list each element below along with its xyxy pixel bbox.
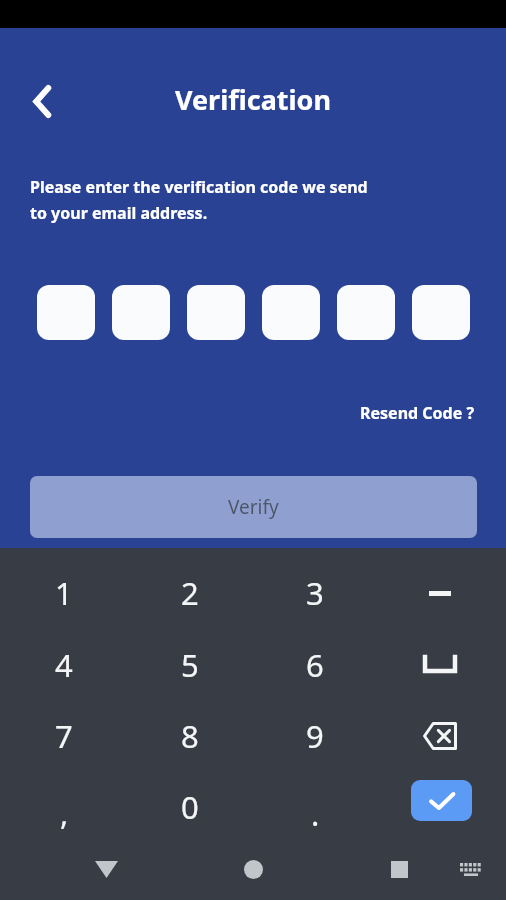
- button[interactable]: Confirm: [411, 780, 472, 821]
- staticText: 7: [55, 715, 73, 757]
- button[interactable]: Resend Code ?: [0, 396, 475, 430]
- button[interactable]: Code digit 4: [262, 285, 320, 340]
- button[interactable]: Recent apps: [369, 841, 429, 897]
- button[interactable]: 6: [257, 631, 373, 699]
- button[interactable]: 5: [132, 631, 248, 699]
- button[interactable]: Space: [382, 631, 498, 699]
- button[interactable]: ,: [6, 779, 122, 847]
- button[interactable]: Home: [223, 841, 283, 897]
- button[interactable]: Code digit 1: [37, 285, 95, 340]
- staticText: 1: [55, 572, 73, 614]
- button[interactable]: 7: [6, 702, 122, 770]
- staticText: 2: [181, 572, 199, 614]
- button[interactable]: Switch keyboard: [446, 845, 496, 893]
- button[interactable]: Minus: [382, 559, 498, 627]
- staticText: 9: [306, 715, 324, 757]
- button[interactable]: 0: [132, 773, 248, 841]
- staticText: 5: [181, 644, 199, 686]
- button[interactable]: 2: [132, 559, 248, 627]
- button[interactable]: Back: [19, 78, 65, 124]
- button[interactable]: 8: [132, 702, 248, 770]
- button[interactable]: 4: [6, 631, 122, 699]
- button[interactable]: .: [257, 780, 373, 848]
- button[interactable]: 3: [257, 559, 373, 627]
- staticText: Verification: [0, 81, 506, 118]
- button[interactable]: Code digit 2: [112, 285, 170, 340]
- staticText: 8: [181, 715, 199, 757]
- button[interactable]: 9: [257, 702, 373, 770]
- staticText: 6: [306, 644, 324, 686]
- button[interactable]: Backspace: [382, 702, 498, 770]
- button[interactable]: Verify: [30, 476, 477, 538]
- staticText: 3: [306, 572, 324, 614]
- staticText: Verify: [228, 494, 279, 520]
- button[interactable]: Code digit 3: [187, 285, 245, 340]
- button[interactable]: Code digit 6: [412, 285, 470, 340]
- button[interactable]: Back: [76, 841, 136, 897]
- staticText: 4: [55, 644, 73, 686]
- staticText: 0: [181, 786, 199, 828]
- staticText: .: [311, 793, 320, 835]
- staticText: Resend Code ?: [360, 402, 475, 424]
- button[interactable]: 1: [6, 559, 122, 627]
- staticText: ,: [60, 792, 69, 834]
- staticText: Please enter the verification code we se…: [30, 176, 368, 224]
- button[interactable]: Code digit 5: [337, 285, 395, 340]
